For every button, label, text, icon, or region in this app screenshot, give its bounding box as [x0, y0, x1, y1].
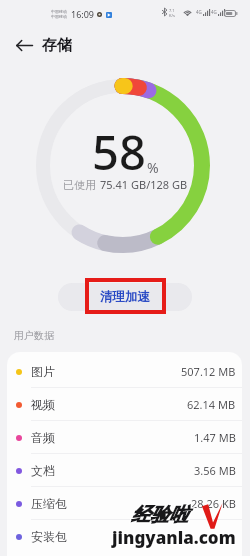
staticText: 75.41 GB/128 GB — [100, 177, 188, 192]
staticText: 经验啦 — [132, 502, 189, 526]
staticText: 16:09 — [71, 8, 95, 20]
button[interactable]: 音频 — [7, 421, 242, 454]
staticText: 经验啦 — [131, 504, 188, 528]
staticText: jingyanla.com — [113, 526, 237, 549]
staticText: 507.12 MB — [181, 364, 236, 379]
staticText: jingyanla.com — [112, 526, 236, 549]
button[interactable]: 压缩包 — [7, 487, 242, 520]
button[interactable]: 视频 — [7, 388, 242, 421]
button[interactable]: 图片 — [7, 355, 242, 388]
staticText: % — [147, 158, 159, 177]
staticText: 经验啦 — [132, 503, 189, 527]
staticText: 4G — [196, 9, 202, 15]
staticText: 3.56 MB — [194, 463, 236, 478]
staticText: 中国移动 — [51, 9, 67, 14]
staticText: 经验啦 — [130, 504, 187, 528]
staticText: 已使用 — [63, 178, 96, 192]
staticText: 视频 — [31, 397, 55, 412]
staticText: 经验啦 — [130, 503, 187, 527]
staticText: 28.26 KB — [191, 496, 236, 511]
button[interactable]: 文档 — [7, 454, 242, 487]
staticText: 音频 — [31, 430, 55, 445]
staticText: 7.1 — [169, 8, 175, 13]
staticText: K/s — [169, 13, 175, 18]
staticText: 压缩包 — [31, 496, 67, 511]
staticText: jingyanla.com — [111, 527, 235, 550]
staticText: 1.47 MB — [194, 430, 236, 445]
button[interactable]: 返回 — [9, 30, 39, 60]
staticText: 存储 — [42, 36, 72, 55]
staticText: 4G — [211, 9, 217, 15]
button[interactable]: 安装包 — [7, 520, 242, 553]
staticText: 经验啦 — [131, 502, 188, 526]
staticText: jingyanla.com — [112, 525, 236, 548]
staticText: 中国移动 — [51, 14, 67, 19]
staticText: 安装包 — [31, 529, 67, 544]
staticText: 图片 — [31, 364, 55, 379]
staticText: jingyanla.com — [112, 527, 236, 550]
staticText: 用户数据 — [14, 329, 54, 342]
staticText: 62.14 MB — [187, 397, 236, 412]
staticText: 经验啦 — [131, 503, 188, 527]
button[interactable]: 清理加速 — [58, 283, 192, 311]
staticText: jingyanla.com — [113, 525, 237, 548]
staticText: 文档 — [31, 463, 55, 478]
staticText: jingyanla.com — [111, 525, 235, 548]
staticText: 经验啦 — [130, 502, 187, 526]
staticText: 经验啦 — [132, 504, 189, 528]
staticText: jingyanla.com — [113, 527, 237, 550]
staticText: 清理加速 — [100, 289, 150, 305]
staticText: jingyanla.com — [111, 526, 235, 549]
staticText: 58 — [92, 120, 146, 184]
